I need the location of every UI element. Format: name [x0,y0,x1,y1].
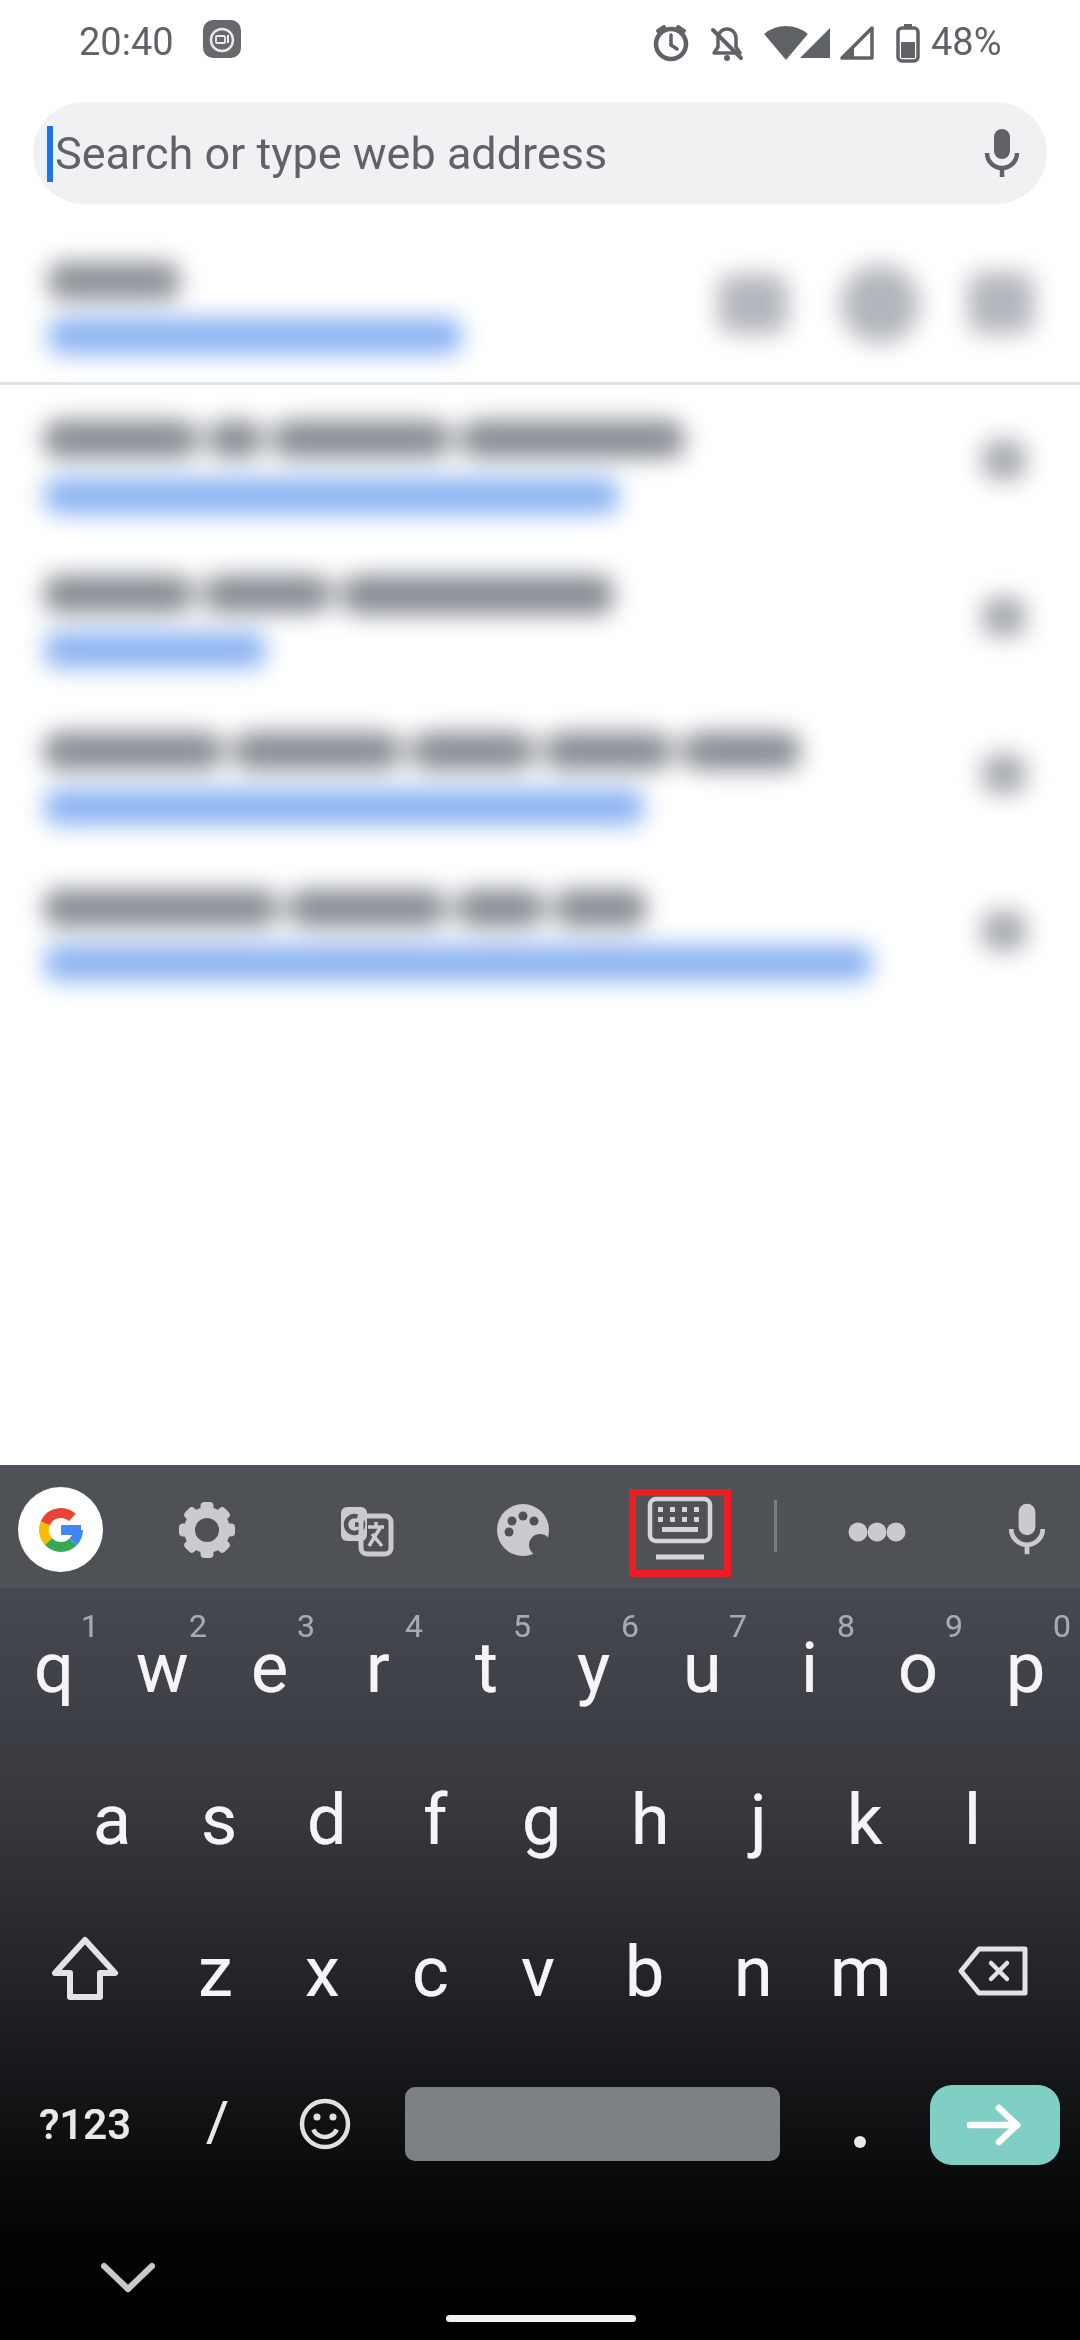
staticText: u [683,1627,722,1709]
staticText: z [198,1931,233,2013]
staticText: c [412,1931,449,2013]
button[interactable]: j [704,1744,812,1896]
button[interactable]: q [0,1592,108,1744]
staticText: v [521,1931,555,2013]
button[interactable] [495,1502,551,1558]
staticText: 4 [405,1607,423,1645]
button[interactable] [930,2085,1060,2165]
staticText: d [307,1779,347,1861]
staticText: i [801,1627,819,1709]
button[interactable] [177,1502,237,1558]
button[interactable]: t [432,1592,540,1744]
staticText: g [522,1779,562,1861]
staticText: e [251,1627,289,1709]
staticText: q [34,1627,74,1709]
staticText: 9 [945,1607,963,1645]
staticText: k [847,1779,883,1861]
button[interactable] [0,540,1080,695]
button[interactable] [18,1487,103,1572]
button[interactable] [337,1502,393,1558]
button[interactable]: r [324,1592,432,1744]
button[interactable]: d [273,1744,381,1896]
staticText: 5 [513,1607,531,1645]
button[interactable] [838,1512,918,1552]
staticText: o [898,1627,938,1709]
button[interactable]: l [919,1744,1027,1896]
staticText: s [201,1779,238,1861]
button[interactable] [98,2255,158,2301]
button[interactable]: ?123 [0,2082,189,2166]
staticText: j [750,1779,767,1861]
staticText: t [475,1627,498,1709]
button[interactable]: w [108,1592,216,1744]
button[interactable] [0,228,1080,383]
button[interactable] [0,695,1080,850]
button[interactable] [976,128,1028,180]
staticText: f [423,1779,448,1861]
button[interactable]: u [648,1592,756,1744]
button[interactable] [297,2096,353,2152]
staticText: m [830,1931,892,2013]
button[interactable]: e [216,1592,324,1744]
staticText: r [366,1627,390,1709]
staticText: x [305,1931,340,2013]
staticText: a [93,1779,132,1861]
button[interactable]: f [381,1744,489,1896]
button[interactable]: g [488,1744,596,1896]
button[interactable] [45,1937,125,2007]
staticText: 0 [1053,1607,1071,1645]
button[interactable]: m [807,1896,915,2048]
button[interactable]: n [699,1896,807,2048]
staticText: 6 [621,1607,639,1645]
button[interactable]: v [484,1896,592,2048]
button[interactable]: h [596,1744,704,1896]
staticText: 8 [837,1607,855,1645]
staticText: 1 [81,1607,99,1645]
button[interactable] [405,2087,780,2161]
button[interactable]: p [972,1592,1080,1744]
button[interactable] [629,1489,731,1577]
button[interactable]: i [756,1592,864,1744]
staticText: 2 [189,1607,207,1645]
button[interactable]: Search or type web address [33,102,1047,204]
button[interactable] [955,1945,1035,2001]
staticText: Search or type web address [55,127,608,180]
staticText: b [625,1931,665,2013]
button[interactable] [0,385,1080,540]
staticText: / [206,2089,230,2155]
button[interactable] [1000,1503,1056,1559]
button[interactable] [0,850,1080,1005]
button[interactable]: a [58,1744,166,1896]
staticText: h [631,1779,670,1861]
staticText: l [964,1779,982,1861]
button[interactable]: x [268,1896,376,2048]
button[interactable]: k [811,1744,919,1896]
button[interactable]: b [591,1896,699,2048]
button[interactable]: o [864,1592,972,1744]
staticText: 7 [729,1607,747,1645]
staticText: ?123 [39,2100,132,2149]
button[interactable]: s [165,1744,273,1896]
staticText: n [734,1931,773,2013]
button[interactable]: z [161,1896,269,2048]
staticText: p [1006,1627,1046,1709]
button[interactable]: / [170,2066,266,2178]
button[interactable] [840,2105,880,2145]
button[interactable]: y [540,1592,648,1744]
staticText: y [577,1627,611,1709]
staticText: w [136,1627,189,1709]
staticText: 48% [931,20,1002,65]
button[interactable]: c [376,1896,484,2048]
staticText: 3 [297,1607,315,1645]
staticText: 20:40 [79,20,174,65]
